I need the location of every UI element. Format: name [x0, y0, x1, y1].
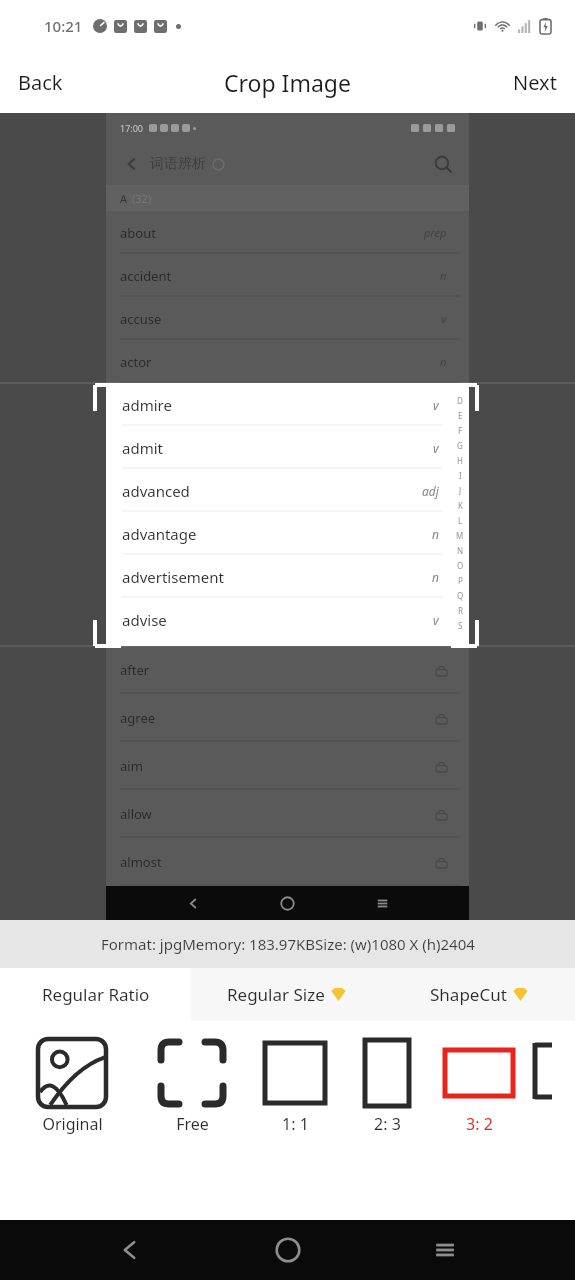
button[interactable]: Back — [102, 1222, 158, 1278]
button[interactable]: Recent apps — [417, 1222, 473, 1278]
staticText: v — [433, 397, 439, 413]
staticText: M — [456, 530, 464, 541]
staticText: ShapeCut — [430, 983, 507, 1006]
button[interactable]: Regular Ratio — [0, 968, 191, 1021]
staticText: aim — [120, 757, 143, 775]
staticText: n — [432, 569, 439, 585]
button[interactable]: Original — [24, 1021, 120, 1151]
staticText: R — [458, 605, 463, 616]
button[interactable]: 2: 3 — [348, 1021, 426, 1151]
staticText: almost — [120, 853, 162, 871]
staticText: advanced — [122, 481, 190, 501]
staticText: about — [120, 224, 156, 242]
staticText: advertisement — [122, 567, 225, 587]
staticText: v — [441, 311, 447, 326]
button[interactable]: 3: 2 — [440, 1021, 518, 1151]
staticText: 10:21 — [44, 16, 83, 36]
staticText: allow — [120, 805, 152, 823]
button[interactable] — [532, 1021, 572, 1141]
staticText: K — [458, 500, 463, 511]
button[interactable]: Back — [0, 59, 81, 106]
staticText: A — [120, 191, 128, 206]
staticText: Crop Image — [224, 67, 351, 98]
button[interactable]: Home — [260, 1222, 316, 1278]
button[interactable]: 1: 1 — [256, 1021, 334, 1151]
staticText: v — [433, 612, 439, 628]
staticText: H — [457, 455, 463, 466]
staticText: agree — [120, 709, 156, 727]
button[interactable]: ShapeCut — [383, 968, 575, 1021]
staticText: accident — [120, 267, 172, 285]
staticText: Original — [42, 1113, 103, 1135]
button[interactable]: Free — [146, 1021, 238, 1151]
staticText: P — [458, 575, 463, 586]
staticText: 1: 1 — [282, 1113, 309, 1135]
button[interactable]: Next — [495, 59, 575, 106]
staticText: J — [459, 485, 462, 496]
staticText: (32) — [132, 191, 152, 206]
staticText: I — [459, 470, 462, 481]
staticText: Regular Ratio — [42, 983, 150, 1006]
staticText: F — [458, 425, 463, 436]
staticText: Format: jpgMemory: 183.97KBSize: (w)1080… — [101, 934, 475, 954]
staticText: O — [457, 560, 464, 571]
staticText: admire — [122, 395, 172, 415]
staticText: S — [458, 620, 463, 631]
staticText: advantage — [122, 524, 197, 544]
staticText: Free — [176, 1113, 209, 1135]
staticText: 2: 3 — [374, 1113, 401, 1135]
staticText: E — [458, 410, 463, 421]
staticText: prep — [424, 225, 447, 240]
staticText: admit — [122, 438, 163, 458]
staticText: Regular Size — [227, 983, 325, 1006]
staticText: accuse — [120, 310, 162, 328]
staticText: L — [458, 515, 463, 526]
staticText: Back — [18, 69, 63, 96]
staticText: advise — [122, 610, 167, 630]
staticText: 17:00 — [120, 122, 144, 134]
staticText: n — [432, 526, 439, 542]
button[interactable]: Regular Size — [191, 968, 383, 1021]
staticText: after — [120, 661, 150, 679]
staticText: actor — [120, 353, 152, 371]
staticText: n — [440, 268, 447, 283]
staticText: Q — [457, 590, 464, 601]
staticText: N — [457, 545, 464, 556]
staticText: n — [440, 354, 447, 369]
staticText: v — [433, 440, 439, 456]
staticText: Next — [513, 69, 557, 96]
staticText: G — [457, 440, 463, 451]
staticText: D — [457, 395, 463, 406]
staticText: 3: 2 — [466, 1113, 493, 1135]
staticText: adj — [422, 483, 439, 499]
staticText: 词语辨析 — [150, 155, 206, 173]
